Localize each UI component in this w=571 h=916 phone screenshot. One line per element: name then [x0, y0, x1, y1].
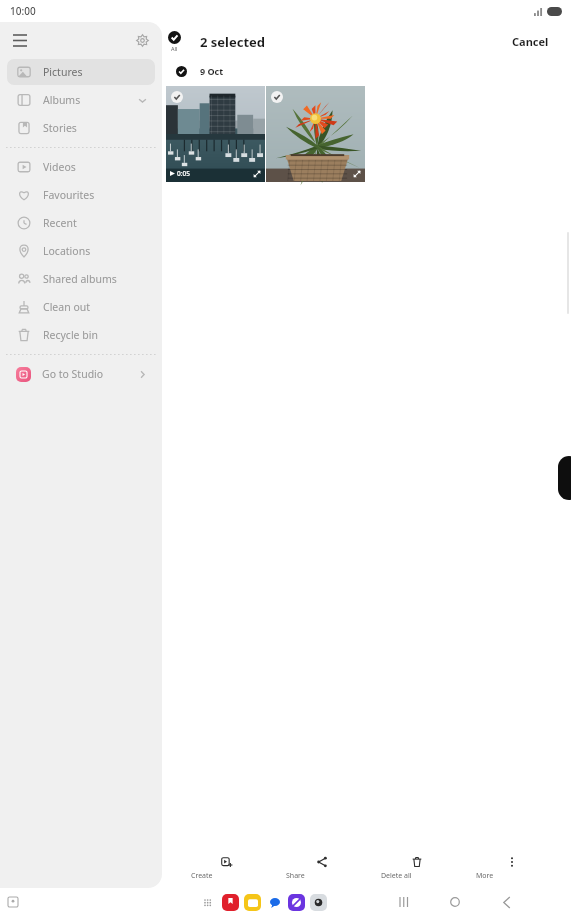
button[interactable]: Pictures — [7, 59, 155, 85]
staticText: 9 Oct — [200, 65, 224, 77]
button[interactable] — [266, 894, 283, 911]
button[interactable]: Albums — [7, 87, 155, 113]
button[interactable]: Shared albums — [7, 266, 155, 292]
button[interactable]: More — [476, 852, 546, 884]
button[interactable]: Select day — [176, 66, 187, 77]
staticText: Recent — [43, 216, 77, 230]
staticText: Pictures — [43, 65, 83, 79]
button[interactable]: Menu — [8, 28, 32, 52]
staticText: Clean out — [43, 300, 91, 314]
button[interactable]: Locations — [7, 238, 155, 264]
button[interactable] — [222, 894, 239, 911]
staticText: Albums — [43, 93, 81, 107]
button[interactable]: Apps — [200, 895, 216, 911]
staticText: Favourites — [43, 188, 95, 202]
staticText: All — [171, 45, 178, 52]
staticText: 10:00 — [10, 4, 36, 18]
staticText: Recycle bin — [43, 328, 98, 342]
staticText: More — [476, 871, 546, 881]
button[interactable]: Create — [191, 852, 261, 884]
button[interactable]: Videos — [7, 154, 155, 180]
button[interactable]: Settings — [130, 28, 154, 52]
staticText: Delete all — [381, 871, 451, 881]
staticText: 2 selected — [200, 33, 266, 51]
button[interactable]: Select all — [166, 31, 183, 52]
button[interactable]: Stories — [7, 115, 155, 141]
staticText: Create — [191, 871, 261, 881]
button[interactable] — [266, 86, 365, 182]
button[interactable]: Clean out — [7, 294, 155, 320]
button[interactable]: Go to Studio — [7, 361, 155, 387]
button[interactable]: Favourites — [7, 182, 155, 208]
staticText: Cancel — [512, 34, 549, 49]
button[interactable]: Recent apps — [377, 889, 429, 915]
staticText: Locations — [43, 244, 91, 258]
button[interactable]: Cancel — [512, 34, 549, 49]
button[interactable] — [288, 894, 305, 911]
button[interactable]: 0:05 — [166, 86, 265, 182]
staticText: Shared albums — [43, 272, 117, 286]
button[interactable]: Back — [481, 889, 533, 915]
button[interactable]: Share — [286, 852, 356, 884]
button[interactable]: Recents — [6, 895, 20, 909]
staticText: Videos — [43, 160, 76, 174]
staticText: Stories — [43, 121, 77, 135]
button[interactable] — [244, 894, 261, 911]
button[interactable]: Recent — [7, 210, 155, 236]
button[interactable]: Home — [429, 889, 481, 915]
staticText: Share — [286, 871, 356, 881]
button[interactable]: Recycle bin — [7, 322, 155, 348]
button[interactable]: Edge panel — [558, 456, 571, 500]
button[interactable]: Delete all — [381, 852, 451, 884]
staticText: Go to Studio — [42, 367, 104, 381]
button[interactable] — [310, 894, 327, 911]
staticText: 0:05 — [177, 169, 190, 178]
